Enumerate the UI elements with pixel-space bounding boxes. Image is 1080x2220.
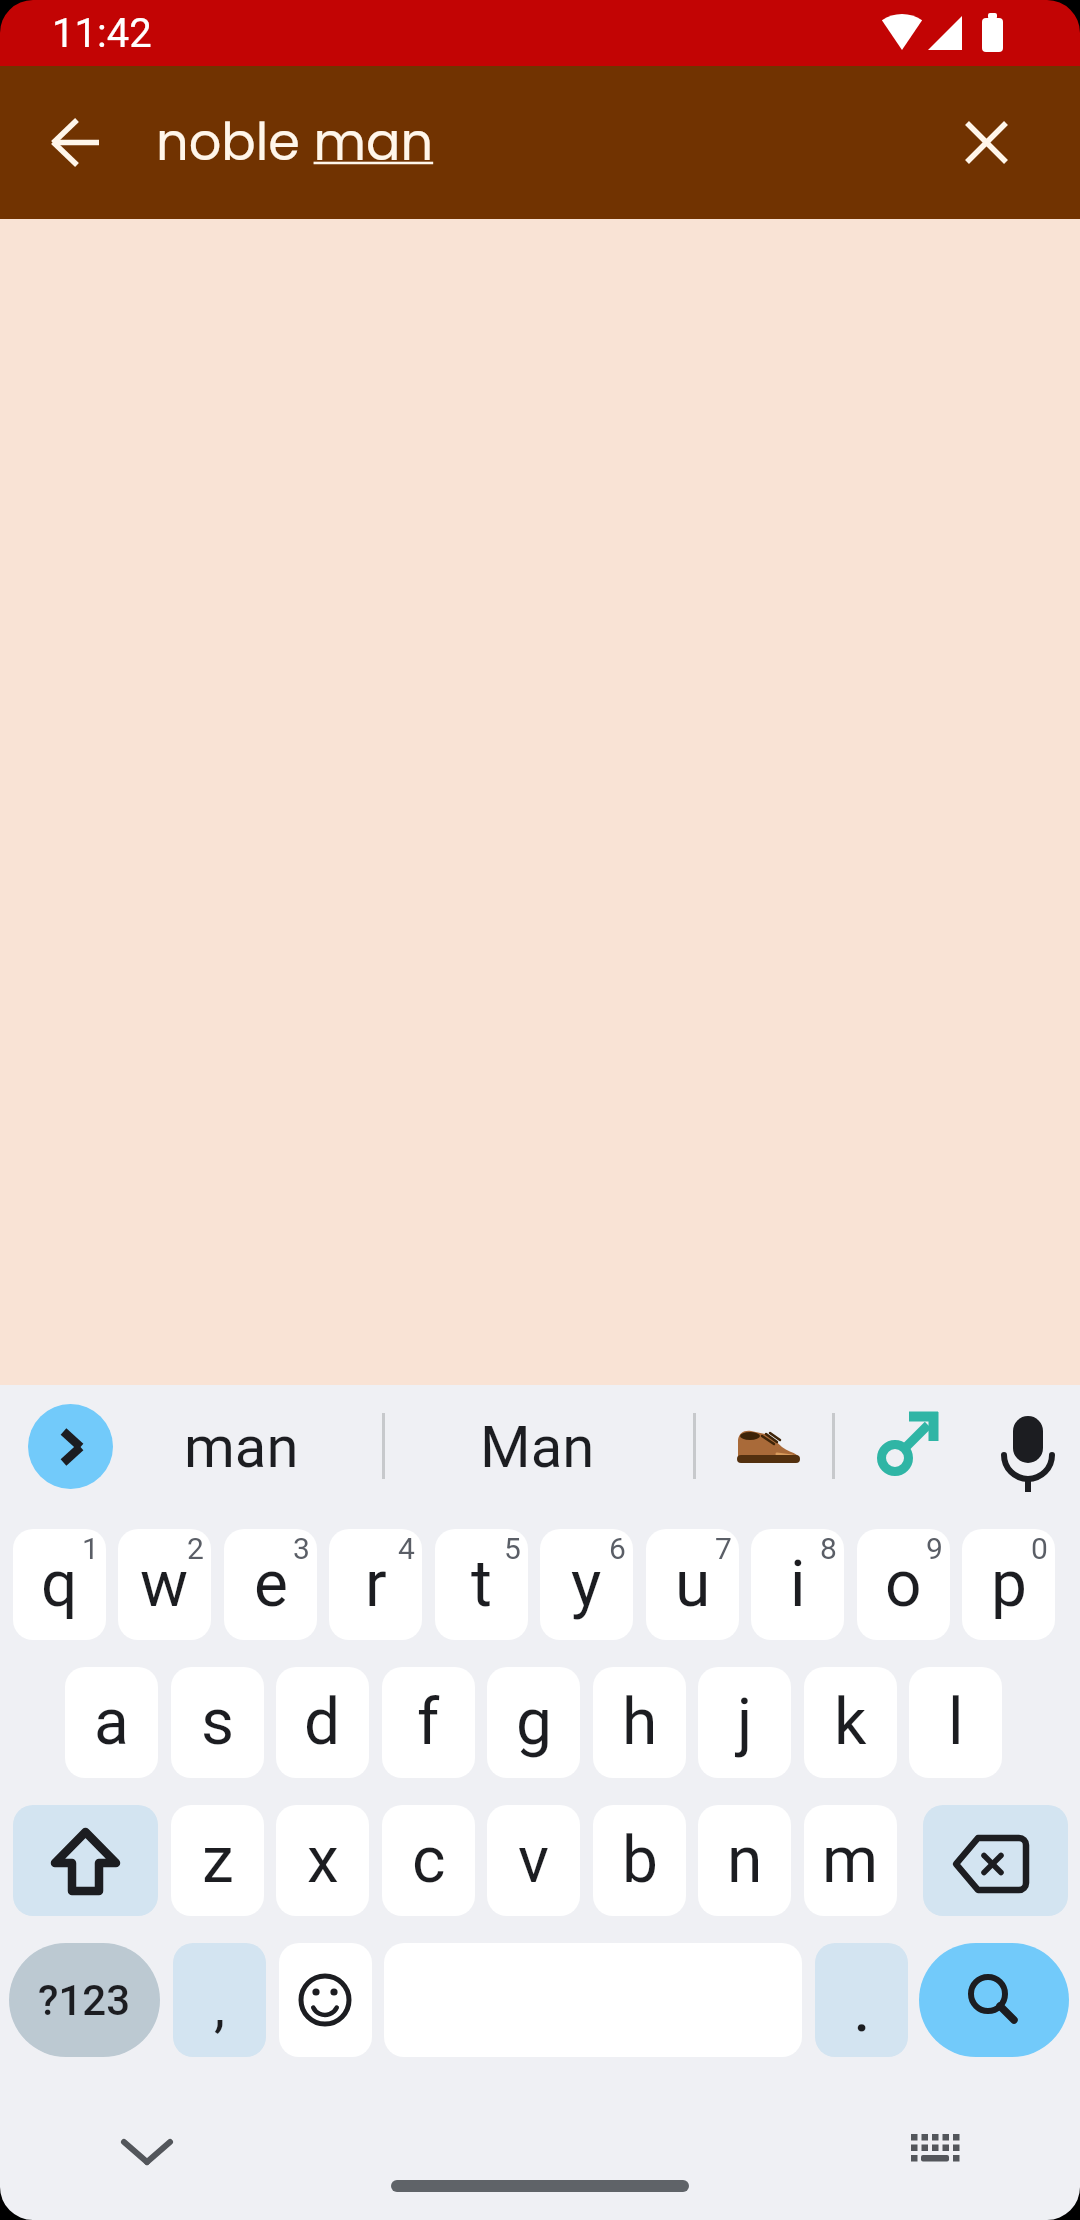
button[interactable]: [995, 1408, 1061, 1500]
staticText: a: [94, 1685, 129, 1760]
staticText: g: [516, 1685, 552, 1760]
button[interactable]: [923, 1805, 1068, 1916]
button[interactable]: c: [382, 1805, 475, 1916]
staticText: n: [727, 1823, 763, 1898]
button[interactable]: l: [909, 1667, 1002, 1778]
staticText: 9: [926, 1531, 943, 1566]
button[interactable]: h: [593, 1667, 686, 1778]
button[interactable]: [279, 1943, 372, 2057]
staticText: f: [417, 1685, 440, 1760]
button[interactable]: n: [698, 1805, 791, 1916]
button[interactable]: ?123: [9, 1943, 160, 2057]
button[interactable]: a: [65, 1667, 158, 1778]
staticText: 6: [609, 1531, 626, 1566]
button[interactable]: j: [698, 1667, 791, 1778]
button[interactable]: z: [171, 1805, 264, 1916]
button[interactable]: [28, 1404, 113, 1489]
staticText: noble man: [156, 106, 434, 177]
staticText: 4: [398, 1531, 415, 1566]
button[interactable]: s: [171, 1667, 264, 1778]
staticText: t: [471, 1547, 492, 1622]
button[interactable]: [729, 1424, 804, 1469]
staticText: 0: [1031, 1531, 1048, 1566]
staticText: d: [304, 1685, 341, 1760]
staticText: k: [834, 1685, 867, 1760]
button[interactable]: i: [751, 1529, 844, 1640]
staticText: l: [948, 1685, 964, 1760]
staticText: e: [254, 1547, 288, 1622]
staticText: q: [41, 1547, 78, 1622]
staticText: ?123: [38, 1976, 131, 2025]
staticText: 5: [504, 1531, 521, 1566]
button[interactable]: o: [857, 1529, 950, 1640]
staticText: x: [307, 1823, 339, 1898]
staticText: h: [622, 1685, 658, 1760]
button[interactable]: [99, 2103, 195, 2199]
staticText: j: [737, 1685, 753, 1760]
staticText: 2: [187, 1531, 204, 1566]
staticText: Man: [480, 1413, 595, 1481]
button[interactable]: g: [487, 1667, 580, 1778]
staticText: 11:42: [52, 10, 152, 57]
staticText: v: [518, 1823, 549, 1898]
staticText: 3: [293, 1531, 310, 1566]
staticText: m: [822, 1823, 879, 1898]
button[interactable]: d: [276, 1667, 369, 1778]
button[interactable]: b: [593, 1805, 686, 1916]
staticText: i: [790, 1547, 806, 1622]
staticText: s: [201, 1685, 235, 1760]
button[interactable]: k: [804, 1667, 897, 1778]
staticText: 7: [715, 1531, 732, 1566]
button[interactable]: Man: [437, 1405, 637, 1489]
staticText: y: [571, 1547, 602, 1622]
button[interactable]: v: [487, 1805, 580, 1916]
staticText: ,: [214, 1974, 226, 2040]
button[interactable]: w: [118, 1529, 211, 1640]
button[interactable]: x: [276, 1805, 369, 1916]
staticText: 1: [82, 1531, 99, 1566]
button[interactable]: e: [224, 1529, 317, 1640]
button[interactable]: ,: [173, 1943, 266, 2057]
staticText: r: [365, 1547, 387, 1622]
button[interactable]: [938, 94, 1034, 190]
button[interactable]: q: [13, 1529, 106, 1640]
button[interactable]: t: [435, 1529, 528, 1640]
button[interactable]: r: [329, 1529, 422, 1640]
staticText: man: [184, 1413, 299, 1481]
staticText: o: [885, 1547, 922, 1622]
staticText: z: [202, 1823, 234, 1898]
staticText: c: [412, 1823, 446, 1898]
staticText: 8: [820, 1531, 837, 1566]
staticText: .: [854, 1979, 870, 2045]
button[interactable]: u: [646, 1529, 739, 1640]
button[interactable]: [919, 1943, 1069, 2057]
staticText: w: [140, 1547, 189, 1622]
staticText: u: [675, 1547, 711, 1622]
button[interactable]: [866, 1402, 950, 1486]
button[interactable]: .: [815, 1943, 908, 2057]
staticText: b: [622, 1823, 658, 1898]
staticText: p: [991, 1547, 1027, 1622]
button[interactable]: p: [962, 1529, 1055, 1640]
button[interactable]: m: [804, 1805, 897, 1916]
button[interactable]: [13, 1805, 158, 1916]
button[interactable]: [887, 2103, 983, 2199]
button[interactable]: y: [540, 1529, 633, 1640]
button[interactable]: f: [382, 1667, 475, 1778]
button[interactable]: [30, 94, 126, 190]
button[interactable]: man: [141, 1405, 341, 1489]
